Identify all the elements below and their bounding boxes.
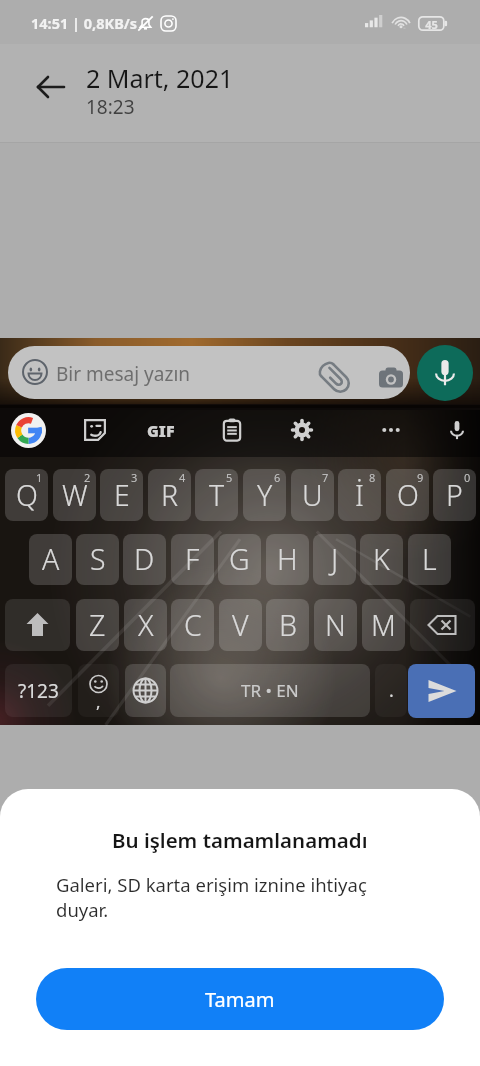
staticText: 8 [369, 470, 376, 485]
staticText: M [371, 606, 396, 645]
staticText: 1 [36, 470, 43, 485]
button[interactable]: O [386, 469, 429, 521]
button[interactable]: Send [408, 664, 475, 718]
staticText: , [96, 690, 101, 713]
button[interactable]: N [314, 599, 357, 651]
button[interactable]: G [218, 534, 261, 585]
button[interactable]: C [171, 599, 214, 651]
staticText: G [229, 540, 250, 579]
staticText: C [184, 606, 202, 645]
button[interactable]: Attach [316, 359, 356, 399]
staticText: N [325, 606, 346, 645]
staticText: 45 [419, 17, 444, 32]
button[interactable]: Back [27, 63, 75, 111]
staticText: H [277, 540, 298, 579]
staticText: L [422, 540, 437, 579]
staticText: R [161, 476, 179, 515]
staticText: X [138, 606, 154, 645]
button[interactable]: Camera [371, 359, 410, 399]
button[interactable]: Y [243, 469, 286, 521]
staticText: TR • EN [241, 679, 299, 702]
button[interactable]: Voice message [417, 345, 473, 401]
staticText: Y [257, 476, 273, 515]
staticText: S [90, 540, 106, 579]
button[interactable]: Keyboard tool [374, 413, 408, 447]
staticText: 5 [226, 470, 233, 485]
button[interactable]: Tamam [36, 968, 444, 1030]
staticText: Bir mesaj yazın [56, 361, 191, 387]
button[interactable]: A [29, 534, 72, 585]
staticText: İ [355, 476, 364, 515]
button[interactable]: J [313, 534, 356, 585]
button[interactable]: L [408, 534, 451, 585]
button[interactable]: Keyboard tool [285, 413, 319, 447]
button[interactable]: X [124, 599, 167, 651]
staticText: T [209, 476, 225, 515]
staticText: 7 [322, 470, 329, 485]
button[interactable]: Google search [11, 413, 46, 448]
button[interactable]: R [148, 469, 191, 521]
button[interactable]: Keyboard tool [78, 413, 112, 447]
button[interactable]: Change language [125, 664, 166, 717]
button[interactable]: Q [5, 469, 48, 521]
button[interactable]: ?123 [5, 664, 72, 717]
button[interactable]: K [360, 534, 403, 585]
staticText: Q [16, 476, 38, 515]
staticText: O [397, 476, 419, 515]
button[interactable]: Z [76, 599, 119, 651]
staticText: 2 Mart, 2021 [86, 61, 234, 95]
staticText: Bu işlem tamamlanamadı [112, 826, 368, 854]
button[interactable]: TR • EN [170, 664, 370, 717]
staticText: . [389, 678, 394, 703]
button[interactable]: Bir mesaj yazın [8, 346, 410, 399]
staticText: V [232, 606, 249, 645]
staticText: W [62, 476, 88, 515]
staticText: Galeri, SD karta erişim iznine ihtiyaç d… [56, 872, 394, 923]
staticText: Z [89, 606, 106, 645]
staticText: ?123 [18, 678, 59, 704]
staticText: 3 [131, 470, 138, 485]
staticText: J [331, 540, 339, 579]
button[interactable]: S [76, 534, 119, 585]
button[interactable]: M [362, 599, 405, 651]
button[interactable]: E [100, 469, 143, 521]
staticText: GIF [147, 420, 175, 442]
staticText: 9 [417, 470, 424, 485]
staticText: U [302, 476, 323, 515]
staticText: Tamam [205, 986, 275, 1013]
button[interactable]: D [123, 534, 166, 585]
staticText: 0 [464, 470, 471, 485]
button[interactable]: Keyboard tool [215, 413, 249, 447]
staticText: E [114, 476, 130, 515]
button[interactable]: . [375, 664, 407, 717]
staticText: F [185, 540, 200, 579]
button[interactable]: Backspace [410, 599, 475, 651]
button[interactable]: F [171, 534, 214, 585]
button[interactable]: P [433, 469, 476, 521]
staticText: A [42, 540, 60, 579]
button[interactable]: W [53, 469, 96, 521]
button[interactable]: T [195, 469, 238, 521]
staticText: 2 [84, 470, 91, 485]
button[interactable]: GIF [143, 413, 179, 449]
button[interactable]: Shift [5, 599, 70, 651]
button[interactable]: İ [338, 469, 381, 521]
staticText: K [373, 540, 390, 579]
staticText: B [279, 606, 297, 645]
staticText: 14:51 | 0,8KB/s [31, 13, 138, 33]
button[interactable]: H [266, 534, 309, 585]
staticText: D [134, 540, 155, 579]
staticText: 4 [179, 470, 186, 485]
button[interactable]: V [219, 599, 262, 651]
staticText: P [446, 476, 463, 515]
button[interactable]: B [266, 599, 309, 651]
button[interactable]: Emoji [78, 664, 119, 717]
staticText: 18:23 [86, 94, 135, 120]
staticText: 6 [274, 470, 281, 485]
button[interactable]: U [291, 469, 334, 521]
button[interactable]: Keyboard tool [440, 413, 474, 447]
